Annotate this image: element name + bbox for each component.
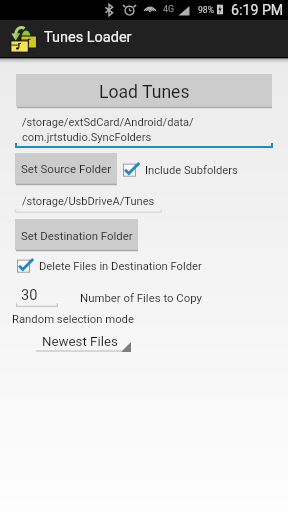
staticText: Set Destination Folder (21, 229, 133, 242)
staticText: Tunes Loader (44, 29, 132, 46)
other: Tunes Loader icon (8, 24, 38, 54)
staticText: 30 (21, 286, 38, 303)
staticText: Number of Files to Copy (80, 291, 202, 304)
staticText: Set Source Folder (21, 162, 112, 175)
button[interactable]: Tunes Loader icon (0, 20, 288, 57)
button[interactable]: Set Destination Folder (15, 219, 138, 250)
button[interactable]: Delete Files in Destination Folder (17, 258, 202, 274)
button[interactable]: Newest Files (30, 332, 130, 356)
button[interactable]: Include Subfolders (123, 162, 238, 178)
staticText: Load Tunes (99, 82, 190, 103)
staticText: Random selection mode (12, 313, 134, 326)
staticText: Delete Files in Destination Folder (39, 260, 202, 273)
staticText: /storage/extSdCard/Android/data/ com.jrt… (22, 116, 194, 144)
staticText: 4G (163, 4, 175, 15)
staticText: /storage/UsbDriveA/Tunes (22, 195, 155, 208)
staticText: Newest Files (42, 334, 118, 350)
button[interactable]: Load Tunes (16, 74, 272, 107)
button[interactable]: Set Source Folder (15, 153, 117, 184)
staticText: 98% (198, 5, 214, 15)
staticText: Include Subfolders (145, 164, 238, 177)
staticText: 6:19 PM (231, 2, 284, 19)
